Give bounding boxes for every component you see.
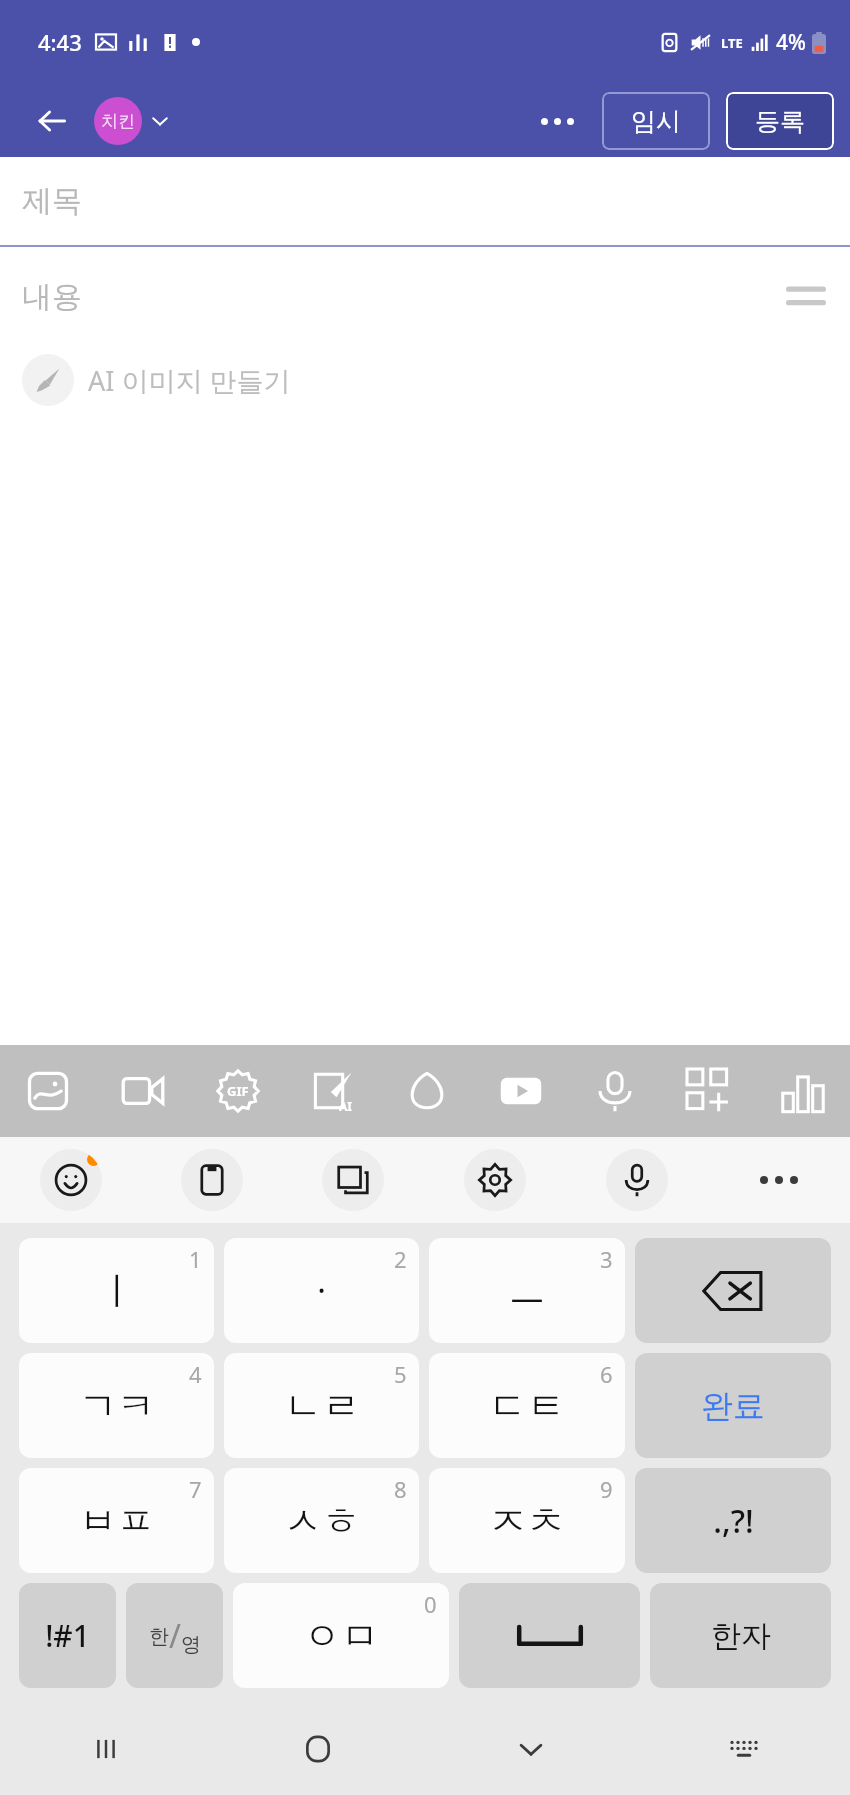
button[interactable]: Keyboard	[637, 1703, 850, 1795]
staticText: GIF	[227, 1082, 249, 1100]
button[interactable]: Back	[26, 95, 78, 147]
staticText: ㅅㅎ	[284, 1497, 360, 1545]
button[interactable]: .,?!	[635, 1468, 831, 1573]
button[interactable]: Clipboard	[141, 1137, 282, 1223]
staticText: 6	[600, 1359, 613, 1389]
button[interactable]: 한	[126, 1583, 223, 1688]
staticText: 치킨	[101, 111, 135, 132]
staticText: LTE	[721, 34, 743, 52]
staticText: 완료	[701, 1386, 765, 1426]
button[interactable]: Align	[780, 271, 832, 323]
staticText: 한자	[711, 1617, 771, 1655]
staticText: AI	[339, 1098, 352, 1114]
staticText: 0	[424, 1589, 437, 1619]
button[interactable]: 완료	[635, 1353, 831, 1458]
button[interactable]: Image	[0, 1045, 95, 1137]
button[interactable]: GIF	[190, 1045, 285, 1137]
staticText: 4:43	[38, 27, 82, 57]
button[interactable]: More	[708, 1137, 850, 1223]
staticText: ·	[317, 1270, 326, 1311]
staticText: ㄴㄹ	[284, 1382, 360, 1430]
button[interactable]: AI draw	[285, 1045, 380, 1137]
button[interactable]: Voice input	[566, 1137, 708, 1223]
button[interactable]: ㅇㅁ	[233, 1583, 449, 1688]
button[interactable]: Poll	[756, 1045, 850, 1137]
button[interactable]: 등록	[726, 92, 834, 150]
button[interactable]: Template	[662, 1045, 756, 1137]
staticText: 8	[394, 1474, 407, 1504]
button[interactable]: ㄴㄹ	[224, 1353, 419, 1458]
button[interactable]: YouTube	[474, 1045, 568, 1137]
button[interactable]: Home	[212, 1703, 424, 1795]
button[interactable]: ㅅㅎ	[224, 1468, 419, 1573]
button[interactable]: More options	[530, 94, 584, 148]
staticText: ㅇㅁ	[303, 1612, 379, 1660]
staticText: 9	[600, 1474, 613, 1504]
button[interactable]: Video	[95, 1045, 190, 1137]
staticText: 한	[149, 1624, 169, 1649]
staticText: 임시	[631, 106, 681, 137]
button[interactable]: ㄷㅌ	[429, 1353, 625, 1458]
button[interactable]: ㅈㅊ	[429, 1468, 625, 1573]
staticText: 7	[189, 1474, 202, 1504]
button[interactable]: ㅣ	[19, 1238, 214, 1343]
button[interactable]: 한자	[650, 1583, 831, 1688]
staticText: 제목	[22, 182, 82, 220]
staticText: 5	[394, 1359, 407, 1389]
staticText: 등록	[755, 106, 805, 137]
staticText: 4%	[776, 28, 806, 57]
button[interactable]: ㄱㅋ	[19, 1353, 214, 1458]
button[interactable]: 내용	[0, 247, 850, 347]
staticText: ㅣ	[98, 1267, 136, 1315]
button[interactable]: Space	[459, 1583, 640, 1688]
button[interactable]: 제목	[0, 157, 850, 245]
staticText: ㄷㅌ	[489, 1382, 565, 1430]
staticText: !#1	[45, 1615, 90, 1656]
staticText: AI 이미지 만들기	[88, 362, 291, 399]
staticText: 2	[394, 1244, 407, 1274]
staticText: ㅡ	[508, 1267, 546, 1315]
button[interactable]: ㅂㅍ	[19, 1468, 214, 1573]
staticText: 내용	[22, 278, 82, 316]
button[interactable]: Backspace	[635, 1238, 831, 1343]
button[interactable]: Sticker	[380, 1045, 474, 1137]
button[interactable]: 임시	[602, 92, 710, 150]
button[interactable]: Keyboard modes	[282, 1137, 424, 1223]
staticText: 영	[181, 1632, 201, 1657]
button[interactable]: !#1	[19, 1583, 116, 1688]
staticText: ㄱㅋ	[79, 1382, 155, 1430]
staticText: 1	[189, 1244, 202, 1274]
button[interactable]: Hide keyboard	[424, 1703, 637, 1795]
button[interactable]: ㅡ	[429, 1238, 625, 1343]
staticText: /	[169, 1614, 181, 1658]
button[interactable]: 치킨	[92, 95, 172, 147]
staticText: .,?!	[713, 1499, 754, 1543]
staticText: ㅂㅍ	[79, 1497, 155, 1545]
staticText: ㅈㅊ	[489, 1497, 565, 1545]
button[interactable]: AI 이미지 만들기	[18, 347, 295, 413]
button[interactable]: Emoji	[0, 1137, 141, 1223]
button[interactable]: Voice	[568, 1045, 662, 1137]
button[interactable]: Settings	[424, 1137, 566, 1223]
button[interactable]: ·	[224, 1238, 419, 1343]
staticText: 4	[189, 1359, 202, 1389]
button[interactable]: Recents	[0, 1703, 212, 1795]
staticText: 3	[600, 1244, 613, 1274]
